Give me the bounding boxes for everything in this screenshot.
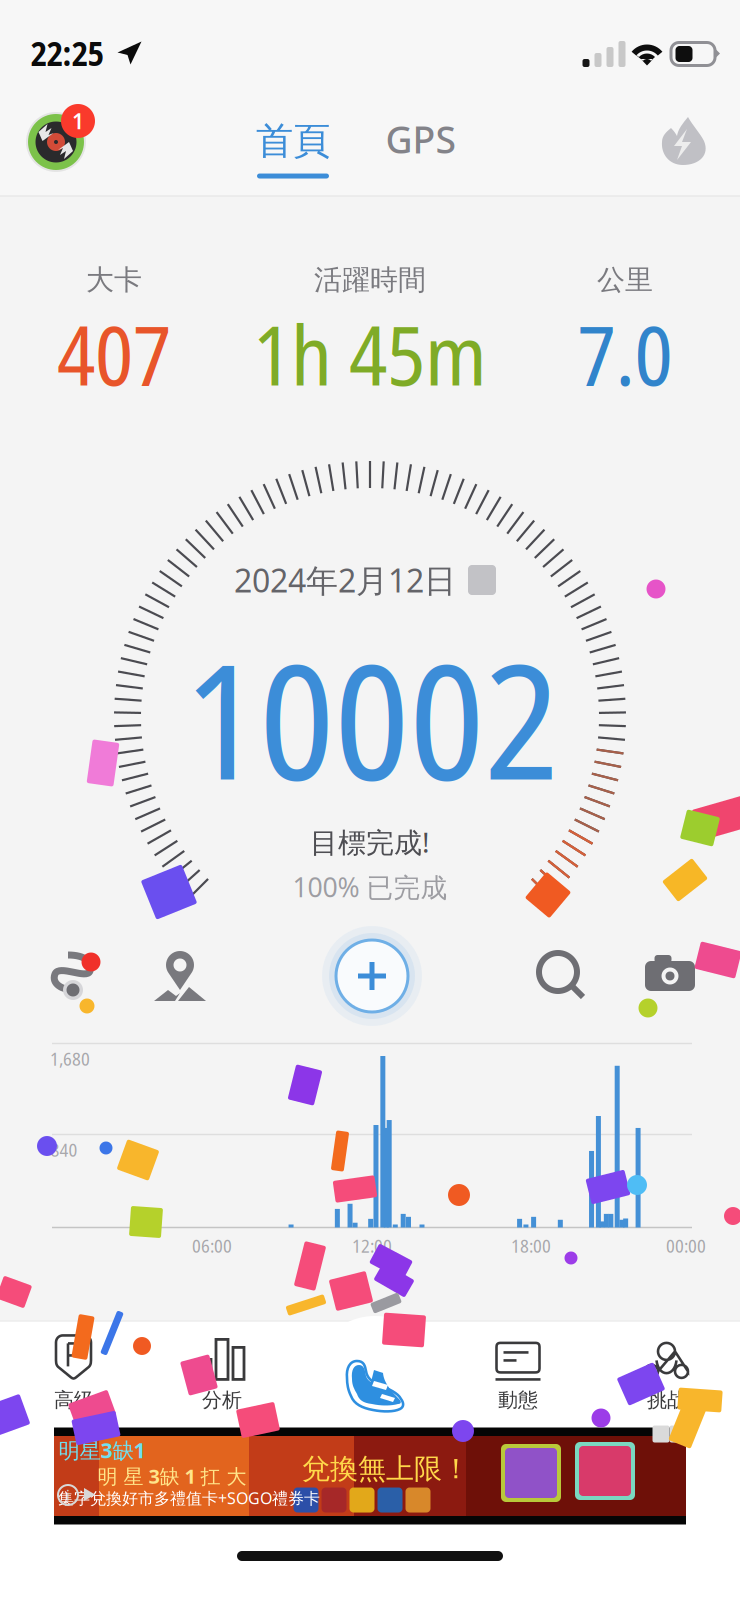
staticText: 2024年2月12日 bbox=[234, 558, 456, 602]
button[interactable]: 首頁 bbox=[233, 105, 353, 191]
staticText: 明星3缺1 bbox=[58, 1435, 145, 1465]
staticText: 高级 bbox=[54, 1387, 94, 1413]
staticText: 首頁 bbox=[256, 117, 330, 164]
staticText: 分析 bbox=[202, 1387, 242, 1413]
button[interactable]: Steps bbox=[301, 1315, 449, 1445]
staticText: 公里 bbox=[597, 262, 653, 298]
staticText: 06:00 bbox=[192, 1233, 232, 1258]
staticText: 活躍時間 bbox=[314, 262, 426, 298]
button[interactable]: 高级 bbox=[1, 1334, 147, 1412]
staticText: 10002 bbox=[184, 610, 559, 826]
staticText: 1,680 bbox=[50, 1046, 90, 1071]
staticText: 100% 已完成 bbox=[292, 869, 447, 905]
staticText: GPS bbox=[385, 114, 456, 164]
staticText: 明 星 3缺 1 扛 大 bbox=[97, 1462, 246, 1490]
staticText: 動態 bbox=[498, 1387, 538, 1413]
staticText: 挑战 bbox=[647, 1387, 687, 1413]
staticText: 兌換無上限！ bbox=[302, 1451, 470, 1487]
button[interactable]: 動態 bbox=[445, 1338, 591, 1416]
button[interactable]: Search bbox=[504, 926, 620, 1026]
button[interactable]: GPS bbox=[366, 96, 476, 182]
staticText: i bbox=[66, 1485, 70, 1505]
button[interactable]: Profile, 1 notification bbox=[14, 100, 98, 184]
button[interactable]: 分析 bbox=[149, 1336, 295, 1414]
staticText: 目標完成! bbox=[310, 823, 430, 861]
button[interactable]: Routes bbox=[28, 928, 120, 1020]
button[interactable]: Camera bbox=[612, 922, 728, 1022]
staticText: 840 bbox=[50, 1137, 77, 1162]
button[interactable]: Add new bbox=[302, 921, 442, 1031]
staticText: 22:25 bbox=[30, 30, 103, 76]
staticText: 集字兌換好市多禮值卡+SOGO禮券卡 bbox=[58, 1487, 320, 1509]
staticText: 1 bbox=[72, 106, 84, 136]
button[interactable]: Trails bbox=[122, 926, 238, 1026]
staticText: 407 bbox=[57, 299, 171, 409]
button[interactable]: Streak bbox=[660, 115, 706, 167]
staticText: 7.0 bbox=[577, 299, 672, 409]
button[interactable]: 挑战 bbox=[594, 1338, 740, 1416]
staticText: 00:00 bbox=[666, 1233, 706, 1258]
staticText: 18:00 bbox=[511, 1233, 551, 1258]
staticText: 1h 45m bbox=[253, 299, 487, 409]
staticText: ✕ bbox=[672, 1426, 683, 1442]
staticText: 12:00 bbox=[352, 1233, 392, 1258]
staticText: 大卡 bbox=[86, 262, 142, 298]
